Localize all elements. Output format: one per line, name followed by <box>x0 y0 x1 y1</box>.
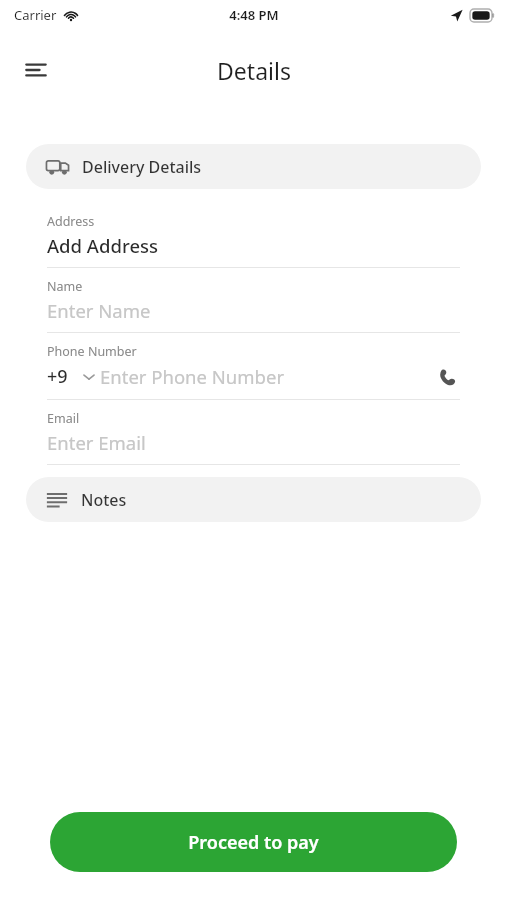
staticText: Carrier <box>14 6 57 24</box>
button[interactable]: Menu <box>14 48 58 92</box>
staticText: Phone Number <box>47 343 137 360</box>
button[interactable]: Delivery Details <box>26 144 481 189</box>
staticText: Enter Email <box>47 430 146 455</box>
button[interactable]: Proceed to pay <box>50 812 457 872</box>
staticText: +9 <box>47 364 68 389</box>
button[interactable]: Address <box>26 203 481 268</box>
staticText: Details <box>217 55 291 86</box>
staticText: Enter Phone Number <box>100 364 434 389</box>
staticText: Email <box>47 410 80 427</box>
button[interactable]: Name <box>26 268 481 333</box>
staticText: Add Address <box>47 233 158 258</box>
button[interactable]: Email <box>26 400 481 465</box>
staticText: Proceed to pay <box>188 830 319 855</box>
staticText: Address <box>47 213 95 230</box>
button[interactable]: Call <box>434 364 460 390</box>
staticText: Notes <box>81 489 127 511</box>
staticText: 4:48 PM <box>229 6 279 24</box>
staticText: Enter Name <box>47 298 151 323</box>
staticText: Delivery Details <box>82 156 202 178</box>
staticText: Name <box>47 278 83 295</box>
button[interactable]: +9 <box>47 362 96 391</box>
other: Select country code <box>82 370 96 384</box>
button[interactable]: Notes <box>26 477 481 522</box>
